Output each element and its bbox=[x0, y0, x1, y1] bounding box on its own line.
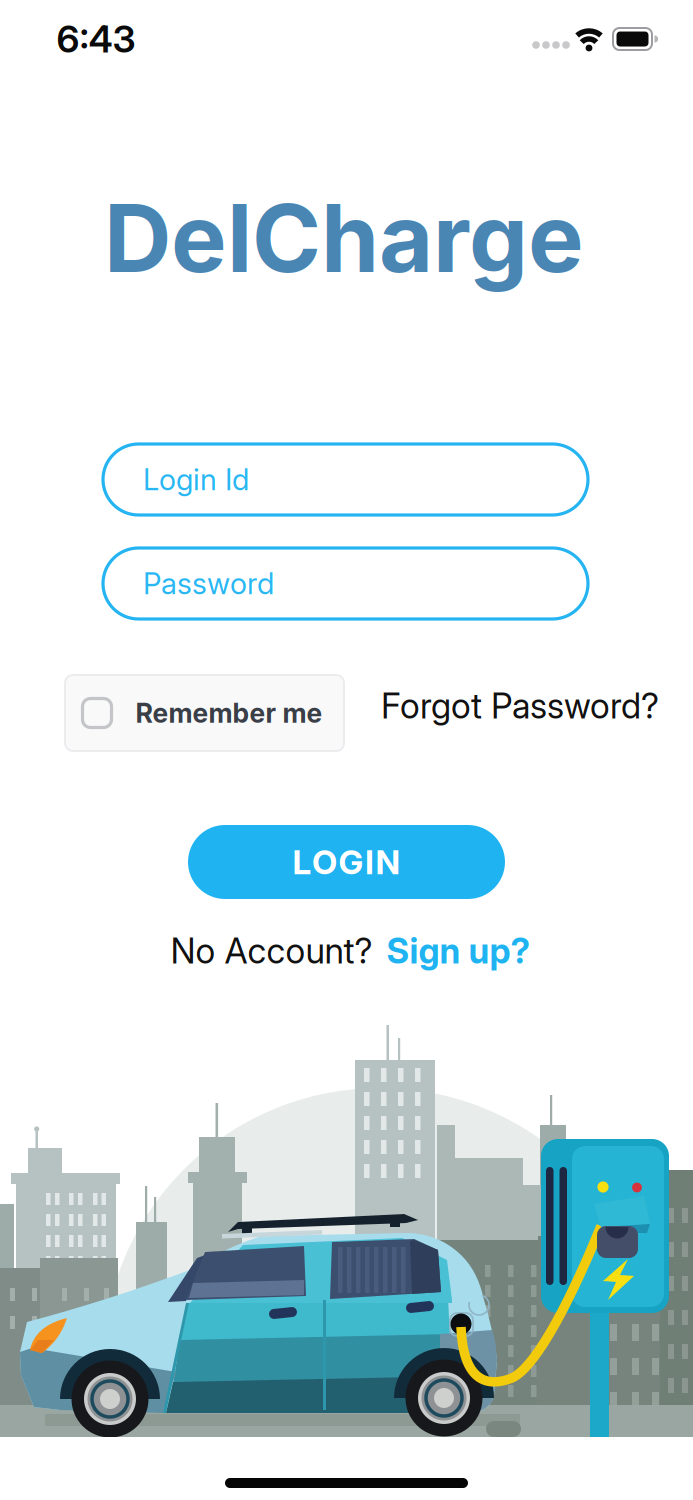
staticText: Forgot Password? bbox=[381, 686, 659, 726]
staticText: Password bbox=[143, 566, 274, 601]
staticText: LOGIN bbox=[292, 842, 400, 882]
button[interactable]: Password bbox=[103, 548, 588, 619]
staticText: 6:43 bbox=[56, 17, 135, 61]
staticText: Sign up? bbox=[386, 931, 530, 971]
button[interactable]: Login Id bbox=[103, 444, 588, 515]
button[interactable]: Forgot Password? bbox=[381, 686, 659, 726]
staticText: No Account? bbox=[170, 931, 372, 971]
staticText: Remember me bbox=[135, 697, 322, 729]
button[interactable]: Remember me bbox=[65, 675, 344, 751]
button[interactable]: LOGIN bbox=[188, 825, 505, 899]
staticText: Login Id bbox=[143, 462, 249, 497]
staticText: DelCharge bbox=[104, 183, 584, 293]
button[interactable]: Sign up? bbox=[386, 931, 530, 971]
